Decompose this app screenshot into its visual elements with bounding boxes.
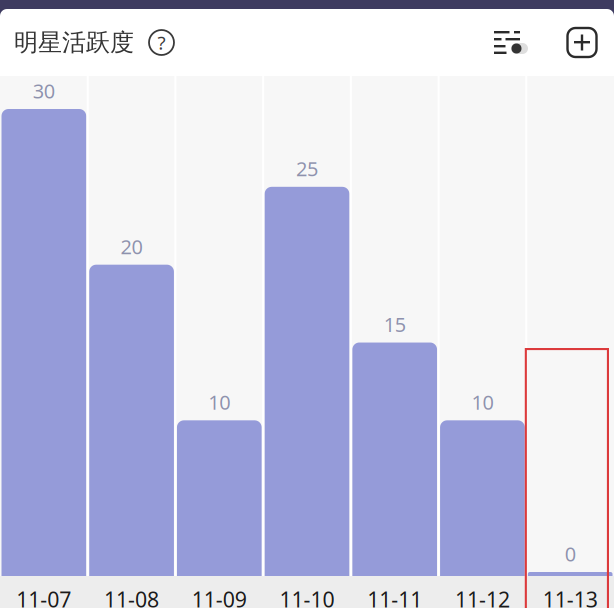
button[interactable]: 0 [526, 76, 614, 576]
staticText: 11-09 [192, 585, 247, 608]
staticText: 明星活跃度 [14, 28, 134, 57]
staticText: 20 [121, 233, 143, 260]
staticText: 11-11 [367, 585, 422, 608]
staticText: 11-07 [16, 585, 71, 608]
staticText: 10 [471, 389, 493, 415]
button[interactable]: Add [567, 27, 597, 57]
button[interactable]: 30 [0, 76, 88, 576]
staticText: 30 [33, 77, 55, 104]
staticText: 15 [384, 311, 406, 337]
button[interactable]: 15 [351, 76, 439, 576]
staticText: 0 [565, 540, 576, 567]
staticText: 11-08 [104, 585, 159, 608]
staticText: 11-10 [279, 585, 334, 608]
staticText: ? [157, 30, 165, 55]
staticText: 25 [296, 155, 318, 182]
button[interactable]: 25 [263, 76, 351, 576]
staticText: 11-12 [455, 585, 510, 608]
button[interactable]: 20 [88, 76, 175, 576]
button[interactable]: 10 [175, 76, 263, 576]
staticText: 11-13 [543, 585, 598, 608]
staticText: 10 [208, 389, 230, 415]
button[interactable]: 10 [439, 76, 526, 576]
button[interactable]: Filter [494, 31, 525, 54]
button[interactable]: Help [148, 29, 175, 56]
